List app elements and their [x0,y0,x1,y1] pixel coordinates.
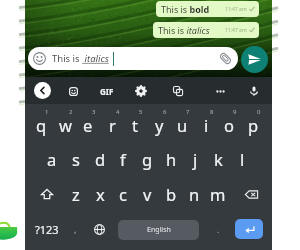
button[interactable]: English [118,220,199,240]
button[interactable]: This is bold [156,1,259,17]
staticText: ?123 [35,222,59,237]
staticText: 1 [45,108,49,116]
staticText: l [240,148,245,170]
staticText: j [193,148,198,170]
staticText: GIF [100,86,114,97]
staticText: 0 [257,108,261,116]
button[interactable]: Translate [171,84,185,98]
staticText: n [189,183,200,205]
staticText: z [72,183,80,205]
button[interactable]: h [159,147,183,171]
button[interactable]: l [230,147,254,171]
other: Emoji [33,52,46,65]
button[interactable]: m [206,182,230,206]
button[interactable]: c [111,182,135,206]
staticText: This is bold [161,3,210,15]
staticText: v [143,183,152,205]
staticText: 6 [163,108,167,116]
button[interactable]: Send [241,46,268,73]
button[interactable]: This is italics [153,22,259,38]
staticText: c [119,183,127,205]
staticText: This is italics [158,24,210,36]
staticText: 3 [92,108,96,116]
button[interactable]: o [217,109,241,136]
button[interactable]: q [29,109,53,136]
button[interactable]: k [206,147,230,171]
button[interactable]: d [88,147,112,171]
staticText: h [166,148,177,170]
staticText: 11:47 am [225,27,247,34]
button[interactable]: Voice input [247,84,261,98]
button[interactable]: j [183,147,207,171]
staticText: s [72,148,80,170]
button[interactable]: Stickers [66,84,80,98]
button[interactable]: r [100,109,124,136]
staticText: a [47,148,57,170]
button[interactable]: Back [34,82,51,99]
button[interactable]: p [241,109,265,136]
button[interactable]: g [135,147,159,171]
button[interactable]: . [210,218,226,240]
button[interactable]: ?123 [33,218,61,240]
staticText: g [142,148,153,170]
button[interactable]: s [64,147,88,171]
staticText: m [210,183,226,205]
button[interactable]: e [76,109,100,136]
button[interactable]: GIF [96,85,118,97]
staticText: k [214,148,223,170]
staticText: 4 [116,108,120,116]
button[interactable]: x [88,182,112,206]
button[interactable]: Enter [235,219,263,239]
staticText: f [120,148,126,170]
staticText: d [95,148,106,170]
button[interactable]: b [159,182,183,206]
staticText: 11:47 am [225,6,247,13]
staticText: w [59,114,72,136]
staticText: , [74,223,77,235]
button[interactable]: a [40,147,64,171]
button[interactable]: y [147,109,171,136]
staticText: i [204,114,209,136]
button[interactable]: Emoji [67,218,83,240]
button[interactable]: Emoji [28,47,238,70]
staticText: 9 [233,108,237,116]
staticText: x [96,183,105,205]
staticText: r [109,114,116,136]
other: Attach [219,52,232,65]
button[interactable]: t [123,109,147,136]
staticText: b [166,183,177,205]
button[interactable]: z [64,182,88,206]
button[interactable]: More options [213,84,227,98]
staticText: 7 [186,108,190,116]
button[interactable]: i [194,109,218,136]
staticText: 2 [69,108,73,116]
button[interactable]: u [170,109,194,136]
staticText: 5 [139,108,143,116]
button[interactable]: Backspace [233,182,270,206]
staticText: t [132,114,138,136]
staticText: English [147,225,171,235]
button[interactable]: App icon [0,215,25,245]
staticText: . [217,223,220,235]
staticText: o [224,114,234,136]
button[interactable]: Shift [29,182,65,206]
button[interactable]: f [111,147,135,171]
staticText: u [177,114,188,136]
staticText: y [155,114,164,136]
button[interactable]: Change language [90,218,108,240]
staticText: p [248,114,259,136]
button[interactable]: n [182,182,206,206]
button[interactable]: Settings [134,84,148,98]
button[interactable]: w [53,109,77,136]
button[interactable]: v [135,182,159,206]
staticText: This is italics [52,52,112,65]
staticText: e [83,114,93,136]
staticText: 8 [210,108,214,116]
staticText: q [36,114,47,136]
